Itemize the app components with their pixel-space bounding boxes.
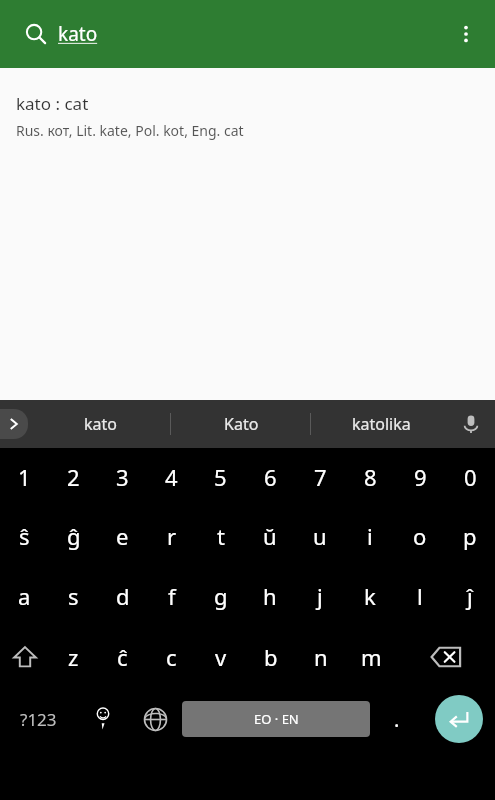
button[interactable]: 3 — [98, 448, 147, 506]
button[interactable]: Kato — [171, 400, 311, 448]
staticText: Rus. кот, Lit. kate, Pol. kot, Eng. cat — [16, 121, 244, 140]
button[interactable]: f — [147, 566, 196, 626]
button[interactable]: 2 — [49, 448, 98, 506]
staticText: 5 — [214, 462, 227, 492]
staticText: r — [167, 521, 177, 551]
button[interactable]: l — [395, 566, 445, 626]
button[interactable]: g — [196, 566, 245, 626]
button[interactable]: c — [147, 626, 196, 688]
button[interactable]: i — [345, 506, 395, 566]
button[interactable]: kato : cat — [0, 68, 495, 400]
button[interactable]: ?123 — [0, 688, 76, 750]
staticText: kato — [58, 21, 98, 47]
staticText: s — [68, 581, 79, 611]
button[interactable]: 1 — [0, 448, 49, 506]
staticText: u — [313, 521, 327, 551]
button[interactable]: 9 — [395, 448, 445, 506]
staticText: p — [463, 521, 477, 551]
staticText: k — [364, 581, 376, 611]
button[interactable]: katolika — [311, 400, 451, 448]
button[interactable]: Backspace — [396, 626, 495, 688]
button[interactable]: 7 — [295, 448, 345, 506]
button[interactable]: Emoji — [76, 688, 129, 750]
button[interactable]: k — [345, 566, 395, 626]
staticText: t — [217, 521, 225, 551]
button[interactable]: a — [0, 566, 49, 626]
staticText: 0 — [464, 462, 477, 492]
button[interactable]: 4 — [147, 448, 196, 506]
button[interactable]: r — [147, 506, 196, 566]
staticText: b — [264, 642, 278, 672]
button[interactable]: Expand suggestions — [0, 409, 28, 439]
staticText: 7 — [314, 462, 327, 492]
button[interactable]: Change keyboard language — [129, 688, 182, 750]
button[interactable]: 8 — [345, 448, 395, 506]
button[interactable]: Shift — [0, 626, 49, 688]
button[interactable]: ŭ — [245, 506, 295, 566]
staticText: v — [215, 642, 227, 672]
button[interactable]: v — [196, 626, 246, 688]
button[interactable]: ĉ — [98, 626, 147, 688]
staticText: ŝ — [19, 521, 30, 551]
staticText: 3 — [116, 462, 129, 492]
button[interactable]: b — [246, 626, 296, 688]
staticText: d — [116, 581, 130, 611]
staticText: ?123 — [20, 708, 57, 731]
staticText: i — [367, 521, 373, 551]
staticText: o — [413, 521, 427, 551]
staticText: kato : cat — [16, 92, 89, 115]
button[interactable]: Voice input — [451, 404, 491, 444]
staticText: 4 — [165, 462, 178, 492]
button[interactable]: 5 — [196, 448, 245, 506]
button[interactable]: More options — [443, 11, 489, 57]
staticText: f — [168, 581, 176, 611]
button[interactable]: t — [196, 506, 245, 566]
button[interactable]: Enter — [435, 695, 483, 743]
staticText: 9 — [414, 462, 427, 492]
staticText: Kato — [224, 413, 259, 435]
button[interactable]: s — [49, 566, 98, 626]
staticText: EO · EN — [254, 710, 299, 728]
button[interactable]: u — [295, 506, 345, 566]
button[interactable]: e — [98, 506, 147, 566]
button[interactable]: Search — [14, 12, 58, 56]
staticText: 8 — [364, 462, 377, 492]
staticText: h — [263, 581, 277, 611]
staticText: ĉ — [117, 642, 128, 672]
staticText: 1 — [18, 462, 31, 492]
staticText: ĝ — [67, 521, 81, 551]
button[interactable]: h — [245, 566, 295, 626]
button[interactable]: n — [296, 626, 346, 688]
staticText: g — [214, 581, 228, 611]
button[interactable]: j — [295, 566, 345, 626]
button[interactable]: kato — [30, 400, 171, 448]
button[interactable]: ĝ — [49, 506, 98, 566]
staticText: . — [394, 706, 400, 733]
button[interactable]: ŝ — [0, 506, 49, 566]
staticText: z — [68, 642, 79, 672]
staticText: 6 — [264, 462, 277, 492]
staticText: 2 — [67, 462, 80, 492]
staticText: katolika — [352, 413, 411, 435]
staticText: kato — [84, 413, 117, 435]
staticText: c — [166, 642, 177, 672]
staticText: e — [116, 521, 129, 551]
button[interactable]: . — [370, 688, 423, 750]
staticText: n — [314, 642, 328, 672]
button[interactable]: m — [346, 626, 396, 688]
button[interactable]: kato — [58, 12, 98, 56]
button[interactable]: 6 — [245, 448, 295, 506]
button[interactable]: ĵ — [445, 566, 495, 626]
staticText: ŭ — [263, 521, 277, 551]
button[interactable]: d — [98, 566, 147, 626]
button[interactable]: EO · EN — [182, 701, 370, 737]
button[interactable]: z — [49, 626, 98, 688]
staticText: l — [417, 581, 423, 611]
staticText: m — [361, 642, 382, 672]
button[interactable]: p — [445, 506, 495, 566]
button[interactable]: o — [395, 506, 445, 566]
staticText: ĵ — [467, 581, 473, 611]
button[interactable]: 0 — [445, 448, 495, 506]
staticText: a — [18, 581, 31, 611]
staticText: j — [317, 581, 323, 611]
